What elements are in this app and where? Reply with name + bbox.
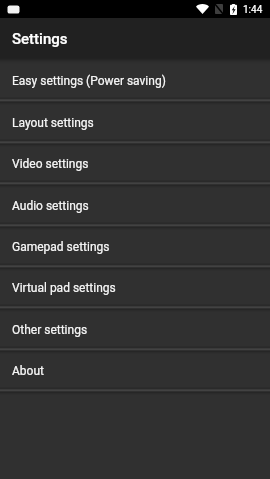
button[interactable]: About [0, 348, 270, 389]
staticText: Virtual pad settings [12, 281, 116, 295]
staticText: 1:44 [243, 4, 263, 16]
button[interactable]: Video settings [0, 141, 270, 182]
staticText: Easy settings (Power saving) [12, 74, 166, 88]
button[interactable]: Other settings [0, 306, 270, 348]
button[interactable]: Layout settings [0, 99, 270, 141]
staticText: Other settings [12, 323, 88, 337]
staticText: Audio settings [12, 199, 89, 213]
button[interactable]: Audio settings [0, 182, 270, 224]
button[interactable]: Virtual pad settings [0, 265, 270, 306]
staticText: Layout settings [12, 116, 94, 130]
staticText: Settings [12, 30, 68, 48]
button[interactable]: Gamepad settings [0, 224, 270, 265]
staticText: About [12, 364, 44, 378]
staticText: Video settings [12, 157, 89, 171]
button[interactable]: Easy settings (Power saving) [0, 58, 270, 99]
staticText: Gamepad settings [12, 240, 110, 254]
